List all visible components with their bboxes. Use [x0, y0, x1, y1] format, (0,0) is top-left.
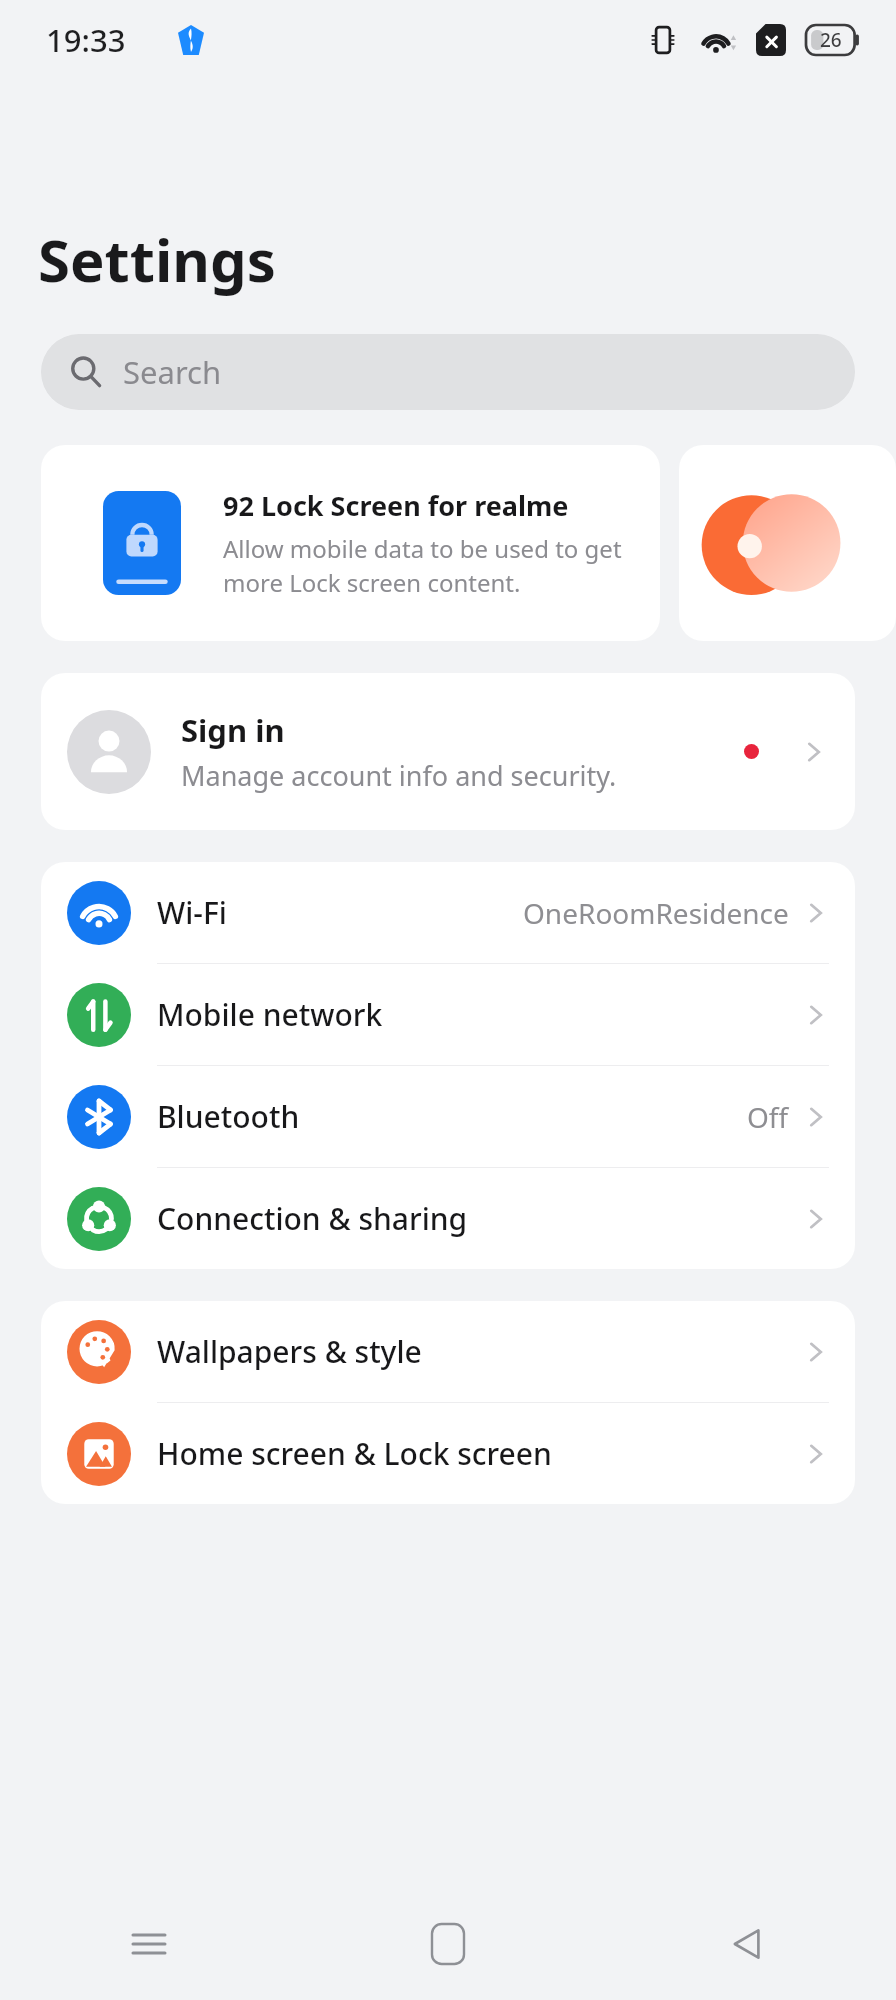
- button[interactable]: Wi-Fi: [41, 862, 855, 964]
- staticText: Home screen & Lock screen: [157, 1433, 552, 1474]
- button[interactable]: Home screen & Lock screen: [41, 1403, 855, 1504]
- button[interactable]: Sign in: [41, 673, 855, 830]
- button[interactable]: Mobile network: [41, 964, 855, 1066]
- button[interactable]: [679, 445, 896, 641]
- staticText: 92 Lock Screen for realme: [223, 487, 569, 524]
- staticText: Allow mobile data to be used to get more…: [223, 532, 623, 599]
- button[interactable]: 92 Lock Screen for realme: [41, 445, 660, 641]
- staticText: Wallpapers & style: [157, 1331, 422, 1372]
- button[interactable]: Home: [392, 1888, 504, 2000]
- staticText: Connection & sharing: [157, 1198, 468, 1239]
- staticText: Manage account info and security.: [181, 757, 617, 794]
- staticText: 26: [820, 27, 842, 53]
- staticText: Wi-Fi: [157, 892, 227, 933]
- button[interactable]: Connection & sharing: [41, 1168, 855, 1269]
- staticText: Settings: [38, 220, 276, 299]
- button[interactable]: Wallpapers & style: [41, 1301, 855, 1403]
- button[interactable]: Recents: [93, 1888, 205, 2000]
- staticText: Mobile network: [157, 994, 383, 1035]
- staticText: Off: [747, 1098, 789, 1136]
- staticText: Search: [123, 351, 222, 393]
- staticText: 19:33: [46, 19, 126, 61]
- button[interactable]: Back: [691, 1888, 803, 2000]
- staticText: Sign in: [181, 709, 285, 751]
- button[interactable]: Search: [41, 334, 855, 410]
- staticText: OneRoomResidence: [523, 894, 789, 932]
- button[interactable]: Bluetooth: [41, 1066, 855, 1168]
- staticText: Bluetooth: [157, 1096, 300, 1137]
